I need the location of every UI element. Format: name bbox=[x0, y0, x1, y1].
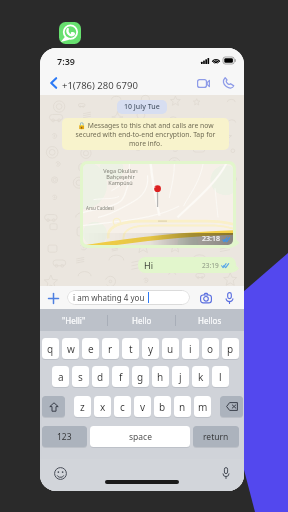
staticText: v bbox=[140, 400, 146, 414]
button[interactable]: "Helli" bbox=[40, 309, 108, 331]
staticText: +1(786) 280 6790 bbox=[62, 79, 138, 92]
staticText: r bbox=[108, 342, 113, 356]
staticText: 7:39 bbox=[57, 55, 75, 67]
button[interactable]: e bbox=[82, 338, 99, 360]
staticText: 10 July Tue bbox=[124, 102, 160, 112]
button[interactable]: space bbox=[90, 426, 190, 448]
button[interactable]: Voice message bbox=[220, 289, 238, 307]
button[interactable]: m bbox=[194, 396, 211, 418]
staticText: Hello bbox=[132, 315, 152, 326]
staticText: 23:18 bbox=[202, 234, 220, 244]
staticText: Hellos bbox=[198, 315, 222, 326]
staticText: s bbox=[78, 370, 83, 384]
staticText: Vega Okulları Bahçeşehir Kampüsü bbox=[103, 167, 138, 187]
staticText: x bbox=[100, 400, 106, 414]
button[interactable]: Dictation bbox=[214, 461, 238, 485]
staticText: h bbox=[157, 370, 164, 384]
button[interactable]: n bbox=[174, 396, 191, 418]
button[interactable]: WhatsApp bbox=[59, 22, 81, 44]
button[interactable]: Attach bbox=[44, 289, 62, 307]
button[interactable]: g bbox=[132, 366, 149, 388]
button[interactable]: l bbox=[212, 366, 229, 388]
button[interactable]: u bbox=[162, 338, 179, 360]
staticText: w bbox=[67, 342, 75, 356]
button[interactable]: 10 July Tue bbox=[117, 100, 167, 114]
button[interactable]: 🔒 Messages to this chat and calls are no… bbox=[62, 118, 229, 150]
button[interactable]: h bbox=[152, 366, 169, 388]
staticText: e bbox=[88, 342, 94, 356]
button[interactable]: t bbox=[122, 338, 139, 360]
staticText: k bbox=[198, 370, 204, 384]
button[interactable]: j bbox=[172, 366, 189, 388]
button[interactable]: Hi bbox=[138, 257, 236, 273]
staticText: l bbox=[219, 370, 222, 384]
button[interactable]: s bbox=[72, 366, 89, 388]
button[interactable]: b bbox=[154, 396, 171, 418]
staticText: c bbox=[120, 400, 125, 414]
staticText: n bbox=[179, 400, 186, 414]
button[interactable]: Shift bbox=[42, 396, 65, 418]
staticText: t bbox=[129, 342, 133, 356]
staticText: d bbox=[97, 370, 104, 384]
staticText: q bbox=[47, 342, 54, 356]
staticText: y bbox=[148, 342, 154, 356]
button[interactable]: Call bbox=[217, 72, 239, 94]
button[interactable]: c bbox=[114, 396, 131, 418]
button[interactable]: Camera bbox=[197, 289, 215, 307]
staticText: m bbox=[198, 400, 208, 414]
button[interactable]: return bbox=[193, 426, 239, 448]
staticText: return bbox=[203, 431, 229, 443]
button[interactable]: a bbox=[52, 366, 69, 388]
button[interactable]: i bbox=[182, 338, 199, 360]
button[interactable]: r bbox=[102, 338, 119, 360]
button[interactable]: d bbox=[92, 366, 109, 388]
staticText: 123 bbox=[57, 431, 72, 443]
button[interactable]: v bbox=[134, 396, 151, 418]
button[interactable]: Backspace bbox=[220, 396, 243, 418]
button[interactable]: q bbox=[42, 338, 59, 360]
staticText: o bbox=[207, 342, 214, 356]
button[interactable]: Hellos bbox=[176, 309, 244, 331]
button[interactable]: Emoji bbox=[48, 461, 72, 485]
staticText: j bbox=[179, 370, 182, 384]
button[interactable]: z bbox=[74, 396, 91, 418]
staticText: f bbox=[119, 370, 123, 384]
staticText: i am whating 4 you bbox=[73, 292, 145, 303]
staticText: i bbox=[189, 342, 192, 356]
staticText: b bbox=[159, 400, 166, 414]
button[interactable]: Hello bbox=[108, 309, 176, 331]
button[interactable]: o bbox=[202, 338, 219, 360]
staticText: g bbox=[137, 370, 144, 384]
staticText: space bbox=[129, 431, 152, 443]
staticText: p bbox=[227, 342, 234, 356]
staticText: z bbox=[80, 400, 85, 414]
button[interactable]: Video call bbox=[192, 72, 214, 94]
button[interactable]: i am whating 4 you bbox=[67, 290, 190, 305]
button[interactable]: Back bbox=[43, 71, 63, 95]
staticText: "Helli" bbox=[62, 315, 86, 326]
staticText: Hi bbox=[144, 259, 153, 271]
staticText: Arsu Caddesi bbox=[86, 205, 114, 211]
button[interactable]: p bbox=[222, 338, 239, 360]
staticText: a bbox=[58, 370, 64, 384]
button[interactable]: k bbox=[192, 366, 209, 388]
staticText: 🔒 Messages to this chat and calls are no… bbox=[70, 121, 221, 148]
button[interactable]: Vega Okulları Bahçeşehir Kampüsü bbox=[80, 161, 236, 248]
staticText: 23:19 bbox=[202, 261, 219, 270]
button[interactable]: x bbox=[94, 396, 111, 418]
button[interactable]: 123 bbox=[42, 426, 87, 448]
staticText: u bbox=[167, 342, 174, 356]
button[interactable]: w bbox=[62, 338, 79, 360]
button[interactable]: f bbox=[112, 366, 129, 388]
button[interactable]: y bbox=[142, 338, 159, 360]
